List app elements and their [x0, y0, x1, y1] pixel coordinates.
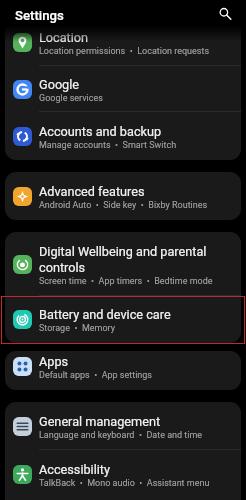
staticText: Advanced features [39, 184, 145, 199]
staticText: Accessibility [39, 462, 111, 477]
staticText: TalkBack • Mono audio • Assistant menu [39, 478, 210, 489]
staticText: Digital Wellbeing and parental controls [39, 244, 217, 275]
staticText: Location [39, 30, 89, 45]
button[interactable]: Digital Wellbeing and parental controls [5, 232, 241, 296]
button[interactable]: General management [5, 402, 241, 450]
staticText: Settings [15, 8, 64, 23]
button[interactable]: Advanced features [5, 172, 241, 220]
staticText: Google [39, 77, 80, 92]
button[interactable]: Accessibility [5, 450, 241, 498]
button[interactable]: Google [5, 66, 241, 112]
staticText: Battery and device care [39, 307, 171, 322]
staticText: Screen time • App timers • Bedtime mode [39, 276, 213, 287]
button[interactable]: Search [212, 2, 236, 26]
staticText: Android Auto • Side key • Bixby Routines [39, 200, 208, 211]
button[interactable]: Battery and device care [5, 296, 241, 343]
button[interactable]: Location [5, 18, 241, 66]
staticText: General management [39, 414, 161, 429]
staticText: Apps [39, 354, 69, 369]
button[interactable]: Apps [5, 351, 241, 386]
staticText: Google services [39, 93, 103, 104]
button[interactable]: Accounts and backup [5, 112, 241, 160]
staticText: Default apps • App settings [39, 370, 153, 381]
staticText: Manage accounts • Smart Switch [39, 140, 177, 151]
staticText: Accounts and backup [39, 124, 162, 139]
staticText: Location permissions • Location requests [39, 46, 210, 57]
staticText: Language and keyboard • Date and time [39, 430, 203, 441]
staticText: Storage • Memory [39, 323, 115, 334]
